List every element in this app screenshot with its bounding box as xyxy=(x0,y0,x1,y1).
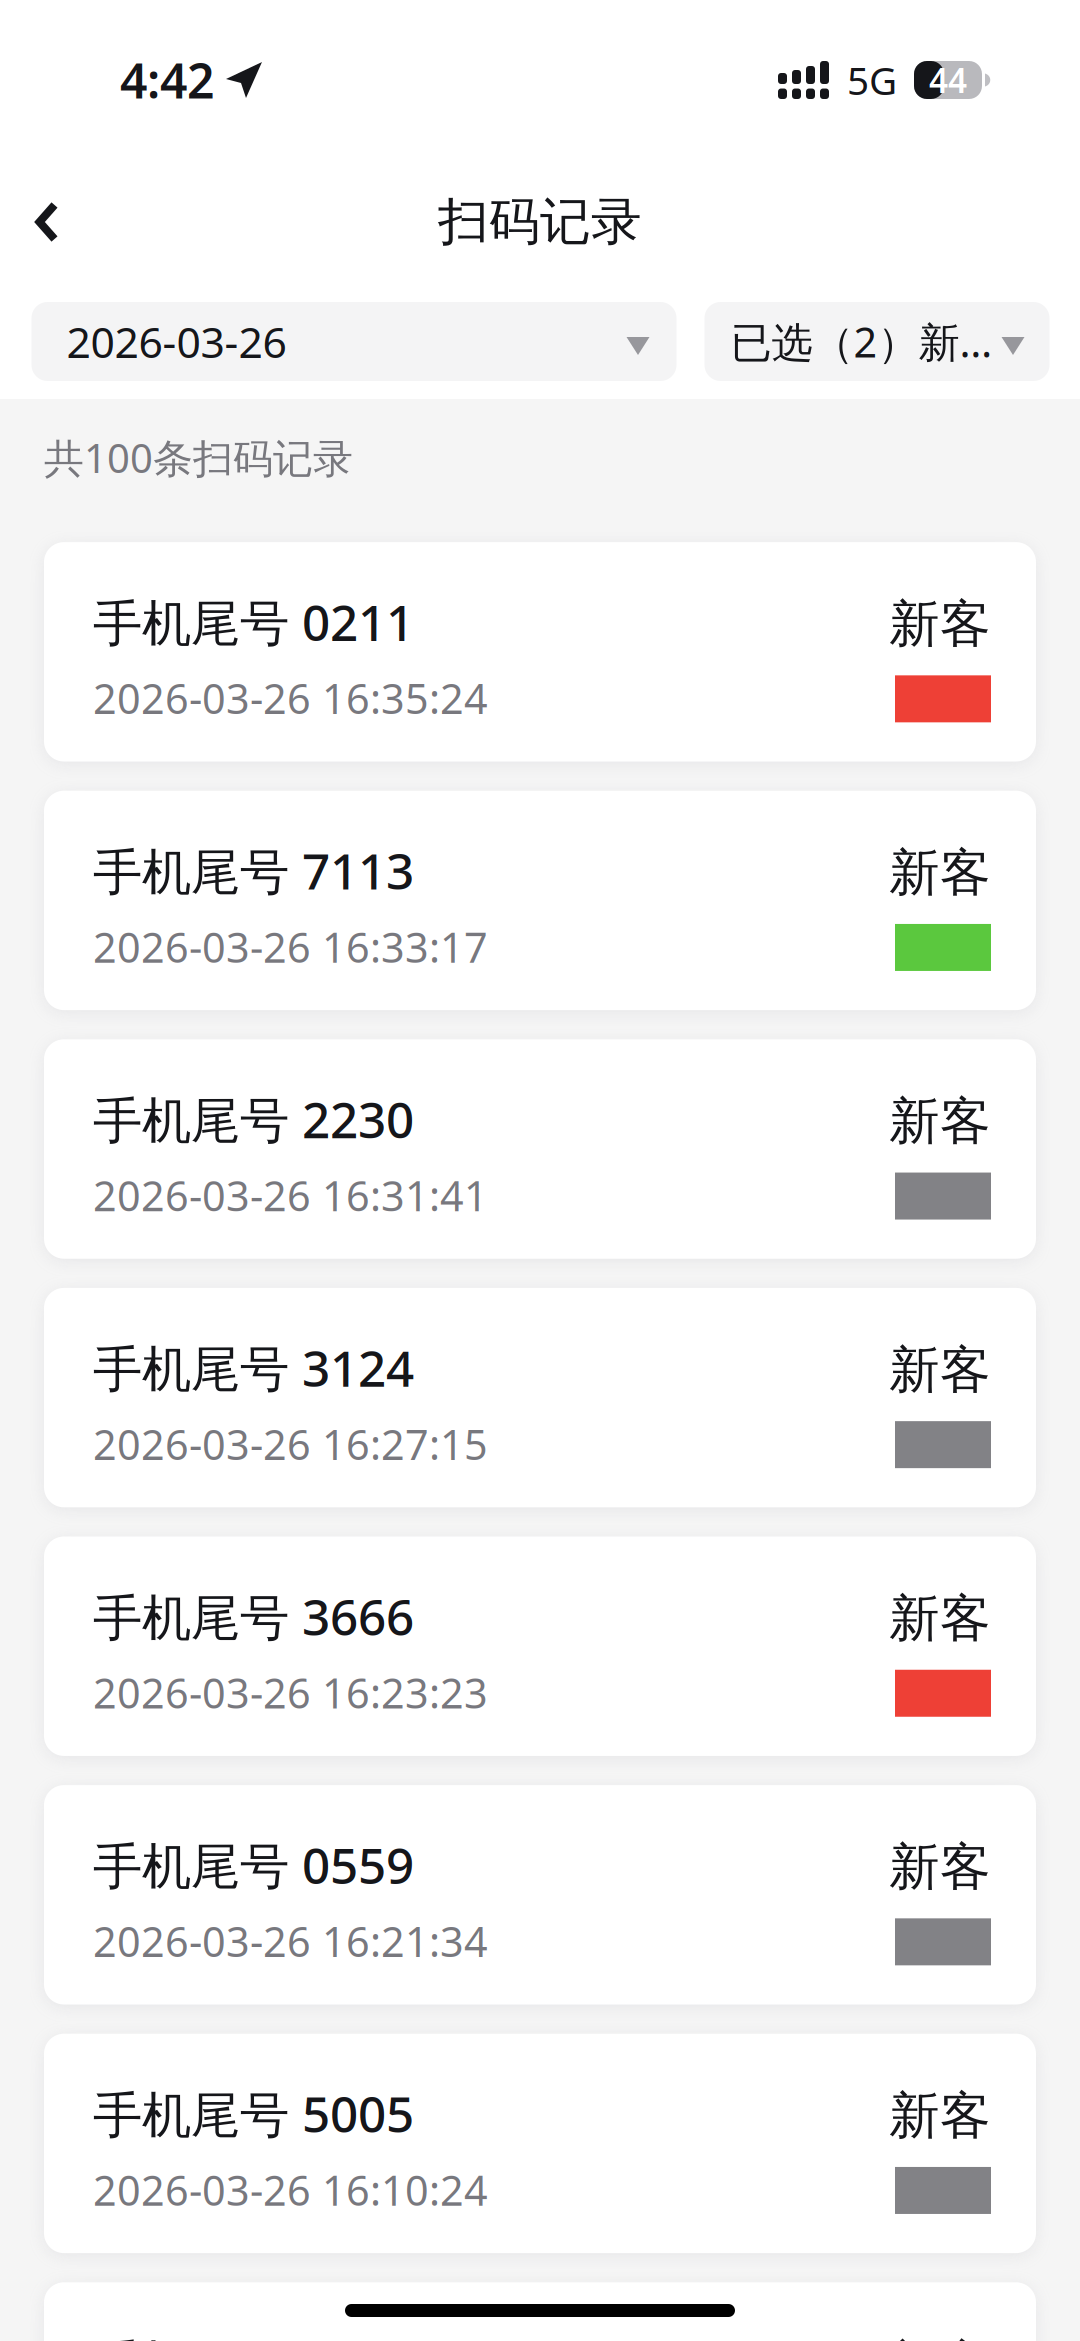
button[interactable]: 手机尾号 0211 xyxy=(44,542,1036,761)
button[interactable]: 手机尾号 7113 xyxy=(44,791,1036,1010)
staticText: 2026-03-26 16:10:24 xyxy=(93,2162,488,2217)
staticText: 2026-03-26 16:35:24 xyxy=(93,671,488,725)
staticText: 手机尾号 1288 xyxy=(93,2329,414,2341)
staticText: 2026-03-26 16:21:34 xyxy=(93,1914,488,1968)
button[interactable]: 手机尾号 2230 xyxy=(44,1039,1036,1259)
button[interactable]: 2026-03-26 xyxy=(31,302,676,381)
staticText: 新客 xyxy=(889,2085,991,2147)
staticText: 手机尾号 0559 xyxy=(93,1832,414,1898)
staticText: 新客 xyxy=(889,1339,991,1401)
staticText: 共100条扫码记录 xyxy=(44,431,353,484)
staticText: 扫码记录 xyxy=(438,191,642,253)
staticText: 新客 xyxy=(889,842,991,904)
staticText: 2026-03-26 xyxy=(66,313,286,370)
staticText: 手机尾号 0211 xyxy=(93,589,414,655)
staticText: 手机尾号 3124 xyxy=(93,1335,414,1400)
staticText: 2026-03-26 16:33:17 xyxy=(93,919,488,974)
staticText: 手机尾号 3666 xyxy=(93,1583,414,1649)
button[interactable]: 手机尾号 5005 xyxy=(44,2034,1036,2253)
staticText: 新客 xyxy=(889,1090,991,1152)
staticText: 5G xyxy=(847,54,897,106)
staticText: 手机尾号 2230 xyxy=(93,1086,414,1152)
staticText: 手机尾号 5005 xyxy=(93,2081,414,2146)
staticText: 新客 xyxy=(889,2333,991,2341)
button[interactable]: 已选（2）新… xyxy=(704,302,1049,381)
staticText: 2026-03-26 16:27:15 xyxy=(93,1416,488,1471)
staticText: 2026-03-26 16:31:41 xyxy=(93,1168,488,1223)
staticText: 44 xyxy=(929,58,967,102)
staticText: 4:42 xyxy=(120,48,214,112)
button[interactable]: 返回 xyxy=(0,177,90,267)
staticText: 已选（2）新… xyxy=(730,314,992,369)
staticText: 2026-03-26 16:23:23 xyxy=(93,1665,488,1720)
button[interactable]: 手机尾号 0559 xyxy=(44,1785,1036,2004)
button[interactable]: 手机尾号 3124 xyxy=(44,1288,1036,1507)
staticText: 新客 xyxy=(889,1587,991,1650)
staticText: 手机尾号 7113 xyxy=(93,838,414,903)
button[interactable]: 手机尾号 1288 xyxy=(44,2282,1036,2341)
staticText: 新客 xyxy=(889,1836,991,1898)
staticText: 新客 xyxy=(889,593,991,655)
button[interactable]: 手机尾号 3666 xyxy=(44,1536,1036,1756)
